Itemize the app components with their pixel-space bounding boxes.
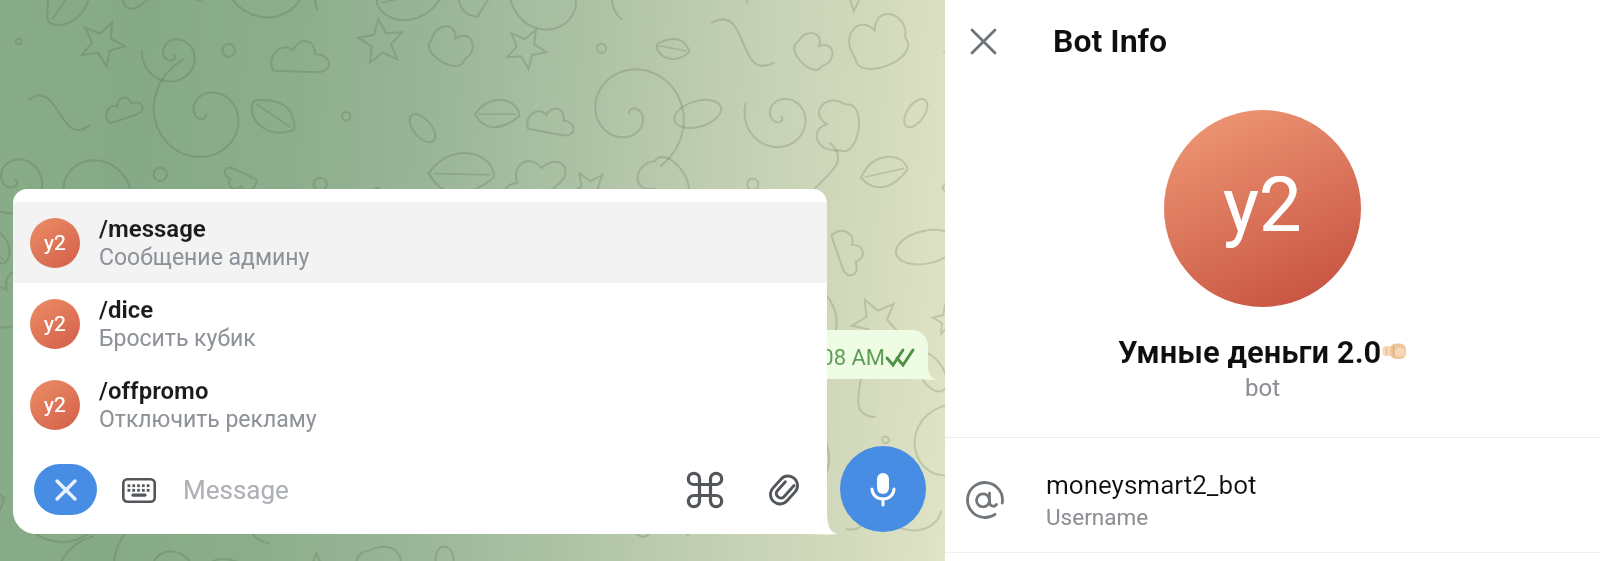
button[interactable]: Attach file (761, 467, 807, 513)
staticText: :08 AM (816, 345, 886, 371)
staticText: Username (1046, 504, 1149, 530)
staticText: у2 (1223, 160, 1302, 249)
staticText: /dice (99, 296, 154, 324)
staticText: Отключить рекламу (99, 406, 317, 433)
staticText: Умные деньги 2.0 (1118, 334, 1382, 370)
button[interactable]: Keyboard (117, 468, 161, 512)
staticText: Bot Info (1053, 22, 1168, 60)
staticText: Бросить кубик (99, 325, 256, 352)
staticText: moneysmart2_bot (1046, 470, 1257, 500)
staticText: у2 (44, 393, 66, 418)
button[interactable]: Close (953, 11, 1013, 71)
staticText: у2 (44, 231, 66, 256)
staticText: Message (183, 475, 289, 505)
staticText: у2 (44, 312, 66, 337)
button[interactable]: Close commands (34, 464, 97, 515)
staticText: /offpromo (99, 377, 209, 405)
button[interactable]: moneysmart2_bot (945, 445, 1600, 555)
button[interactable]: Record voice message (840, 446, 926, 532)
staticText: /message (99, 215, 206, 243)
staticText: bot (1245, 374, 1281, 402)
button[interactable]: Bot commands (682, 467, 728, 513)
button[interactable]: у2 (13, 364, 827, 445)
staticText: Сообщение админу (99, 244, 310, 271)
button[interactable]: у2 (13, 283, 827, 364)
button[interactable]: у2 (13, 202, 827, 283)
